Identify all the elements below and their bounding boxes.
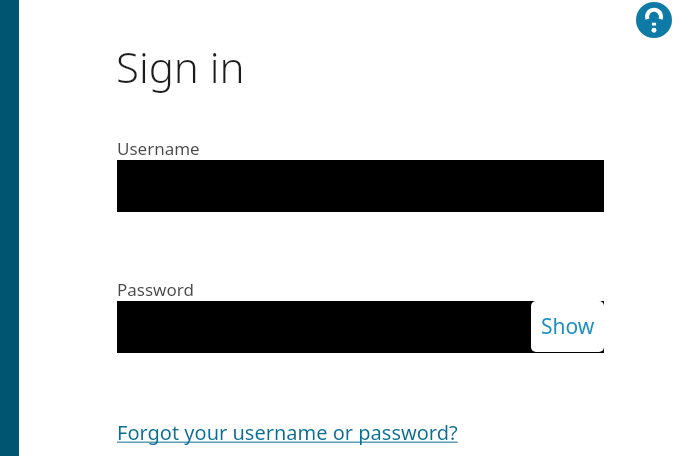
button[interactable]: Forgot your username or password? xyxy=(117,419,458,448)
staticText: Show xyxy=(541,312,595,341)
staticText: Forgot your username or password? xyxy=(117,419,458,446)
staticText: Username xyxy=(117,137,200,160)
button[interactable]: Help xyxy=(636,2,672,38)
staticText: Sign in xyxy=(116,38,245,95)
button[interactable]: Password input field xyxy=(117,301,604,353)
button[interactable]: Show xyxy=(531,301,604,352)
staticText: Password xyxy=(117,278,194,301)
